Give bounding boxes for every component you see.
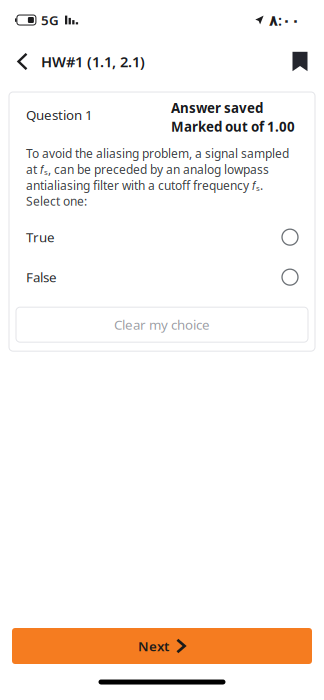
staticText: To avoid the aliasing problem, a signal … (26, 145, 289, 209)
button[interactable]: False (9, 257, 315, 297)
staticText: True (26, 228, 55, 246)
staticText: ٨:٠٠ (269, 10, 300, 30)
button[interactable]: Clear my choice (16, 307, 308, 342)
button[interactable]: Back (5, 41, 40, 81)
staticText: Answer saved (171, 99, 263, 117)
staticText: Next (138, 637, 169, 655)
staticText: Question 1 (26, 106, 93, 124)
staticText: Marked out of 1.00 (171, 118, 295, 135)
staticText: False (26, 268, 57, 286)
staticText: Clear my choice (114, 316, 210, 333)
staticText: HW#1 (1.1, 2.1) (41, 52, 145, 71)
button[interactable]: Bookmark (284, 41, 316, 81)
button[interactable]: True (9, 217, 315, 257)
button[interactable]: Next (12, 628, 312, 664)
staticText: 5G (41, 11, 59, 29)
